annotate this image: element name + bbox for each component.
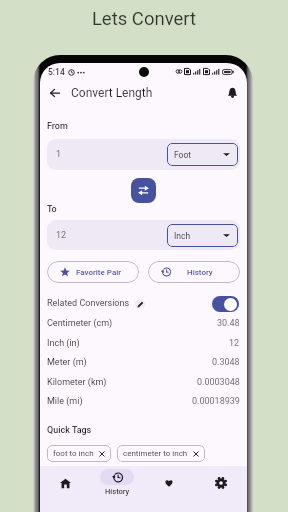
staticText: To — [47, 204, 57, 215]
staticText: History — [105, 487, 130, 496]
button[interactable]: History — [91, 466, 143, 506]
staticText: 0.00018939 — [192, 396, 240, 407]
staticText: Mile (mi) — [47, 396, 83, 407]
staticText: 12 — [56, 230, 67, 241]
button[interactable]: 12 — [47, 220, 240, 250]
button[interactable]: Kilometer (km) — [47, 375, 240, 390]
staticText: 0.0003048 — [197, 377, 240, 388]
button[interactable]: 1 — [47, 139, 240, 170]
button[interactable]: Settings — [195, 466, 247, 500]
button[interactable]: Inch — [167, 224, 238, 247]
staticText: Lets Convert — [0, 8, 288, 30]
button[interactable]: Favorite Pair — [47, 261, 139, 283]
staticText: Foot — [174, 150, 192, 160]
button[interactable]: Foot — [167, 143, 238, 166]
staticText: Kilometer (km) — [47, 377, 107, 388]
button[interactable]: Edit — [135, 299, 145, 309]
button[interactable]: Notifications — [222, 83, 242, 103]
staticText: Quick Tags — [47, 425, 92, 436]
button[interactable]: History — [148, 261, 240, 283]
staticText: Related Conversions — [47, 298, 130, 309]
button[interactable]: Favorites — [143, 466, 195, 500]
staticText: From — [47, 121, 68, 132]
staticText: 12 — [229, 338, 240, 349]
button[interactable]: Centimeter (cm) — [47, 316, 240, 331]
button[interactable]: Back — [45, 83, 65, 103]
button[interactable]: Inch (in) — [47, 336, 240, 351]
staticText: Centimeter (cm) — [47, 318, 113, 329]
button[interactable]: Swap units — [131, 178, 156, 203]
staticText: Inch (in) — [47, 338, 80, 349]
staticText: centimeter to inch — [123, 449, 188, 458]
staticText: 1 — [56, 149, 62, 160]
staticText: Meter (m) — [47, 357, 87, 368]
button[interactable]: centimeter to inch — [123, 445, 199, 462]
staticText: Convert Length — [71, 86, 153, 100]
staticText: Favorite Pair — [76, 268, 122, 277]
button[interactable]: Toggle related conversions — [212, 296, 239, 312]
staticText: History — [187, 268, 213, 277]
staticText: 0.3048 — [212, 357, 240, 368]
button[interactable]: foot to inch — [53, 445, 105, 462]
button[interactable]: Mile (mi) — [47, 394, 240, 409]
staticText: Inch — [174, 231, 191, 241]
button[interactable]: Home — [40, 466, 91, 500]
staticText: 5:14 — [48, 67, 65, 77]
staticText: foot to inch — [53, 449, 94, 458]
staticText: 30.48 — [217, 318, 240, 329]
button[interactable]: Meter (m) — [47, 355, 240, 370]
